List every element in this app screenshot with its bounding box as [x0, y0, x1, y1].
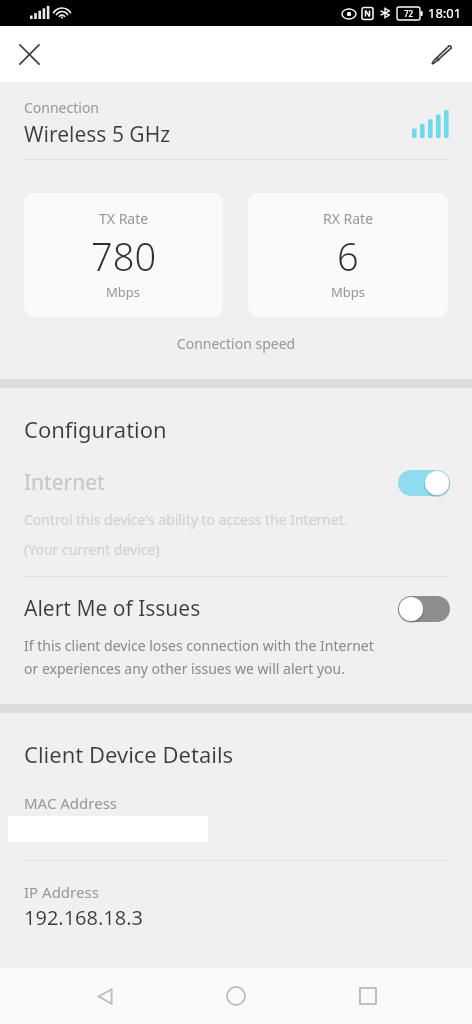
- staticText: 6: [337, 230, 359, 282]
- staticText: Alert Me of Issues: [24, 594, 398, 623]
- button[interactable]: Close: [6, 31, 52, 77]
- staticText: RX Rate: [323, 209, 374, 228]
- staticText: or experiences any other issues we will …: [24, 659, 345, 678]
- staticText: 18:01: [428, 4, 462, 22]
- staticText: Internet: [24, 468, 398, 497]
- staticText: Client Device Details: [24, 739, 234, 769]
- staticText: IP Address: [24, 882, 99, 902]
- button[interactable]: Edit: [418, 31, 464, 77]
- staticText: Connection: [24, 98, 100, 117]
- button[interactable]: Toggle on: [398, 469, 450, 497]
- button[interactable]: Internet: [0, 450, 472, 576]
- staticText: Mbps: [106, 283, 141, 301]
- button[interactable]: RX Rate: [248, 193, 448, 317]
- staticText: Connection speed: [0, 334, 472, 353]
- staticText: Configuration: [24, 414, 167, 444]
- staticText: Wireless 5 GHz: [24, 120, 171, 149]
- staticText: (Your current device): [24, 540, 160, 559]
- button[interactable]: Home: [209, 969, 263, 1023]
- button[interactable]: TX Rate: [24, 193, 223, 317]
- staticText: 780: [91, 230, 157, 282]
- staticText: If this client device loses connection w…: [24, 636, 374, 655]
- staticText: TX Rate: [99, 209, 149, 228]
- button[interactable]: IP Address: [0, 861, 472, 931]
- button[interactable]: Back: [78, 969, 132, 1023]
- staticText: MAC Address: [24, 793, 118, 813]
- button[interactable]: MAC Address: [0, 793, 472, 860]
- staticText: 72: [404, 8, 414, 19]
- staticText: Control this device's ability to access …: [24, 510, 348, 529]
- button[interactable]: Recents: [341, 969, 395, 1023]
- staticText: 192.168.18.3: [24, 904, 144, 931]
- button[interactable]: Alert Me of Issues: [0, 577, 472, 704]
- staticText: Mbps: [331, 283, 366, 301]
- button[interactable]: Toggle off: [398, 595, 450, 623]
